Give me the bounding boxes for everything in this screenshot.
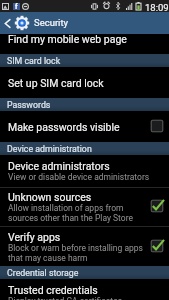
staticText: Find my mobile web page	[8, 34, 127, 45]
button[interactable]: Find my mobile web page	[0, 34, 169, 54]
staticText: Block or warn before installing apps	[8, 243, 143, 253]
button[interactable]: Make passwords visible	[0, 111, 169, 142]
staticText: Allow installation of apps from	[8, 203, 124, 213]
staticText: Verify apps	[8, 231, 61, 243]
button[interactable]: Navigate up, Security	[0, 12, 32, 34]
button[interactable]: Unknown sources	[0, 188, 169, 226]
staticText: Display trusted CA certificates	[8, 296, 123, 300]
button[interactable]: Verify apps	[0, 227, 169, 266]
staticText: Security	[34, 17, 69, 28]
staticText: f	[15, 3, 18, 10]
button[interactable]: Device administrators	[0, 155, 169, 187]
staticText: Make passwords visible	[8, 121, 120, 133]
staticText: Device administration	[7, 144, 92, 154]
staticText: Passwords	[7, 100, 51, 110]
staticText: Credential storage	[7, 268, 79, 278]
button[interactable]: Trusted credentials	[0, 279, 169, 300]
staticText: that may cause harm	[8, 253, 88, 263]
staticText: Set up SIM card lock	[8, 77, 104, 89]
staticText: 18:09	[145, 2, 169, 13]
staticText: SIM card lock	[7, 56, 61, 66]
staticText: Device administrators	[8, 160, 110, 172]
staticText: View or disable device administrators	[8, 172, 150, 182]
staticText: Unknown sources	[8, 191, 92, 203]
button[interactable]: Set up SIM card lock	[0, 67, 169, 98]
staticText: Trusted credentials	[8, 284, 98, 296]
staticText: sources other than the Play Store	[8, 213, 133, 223]
